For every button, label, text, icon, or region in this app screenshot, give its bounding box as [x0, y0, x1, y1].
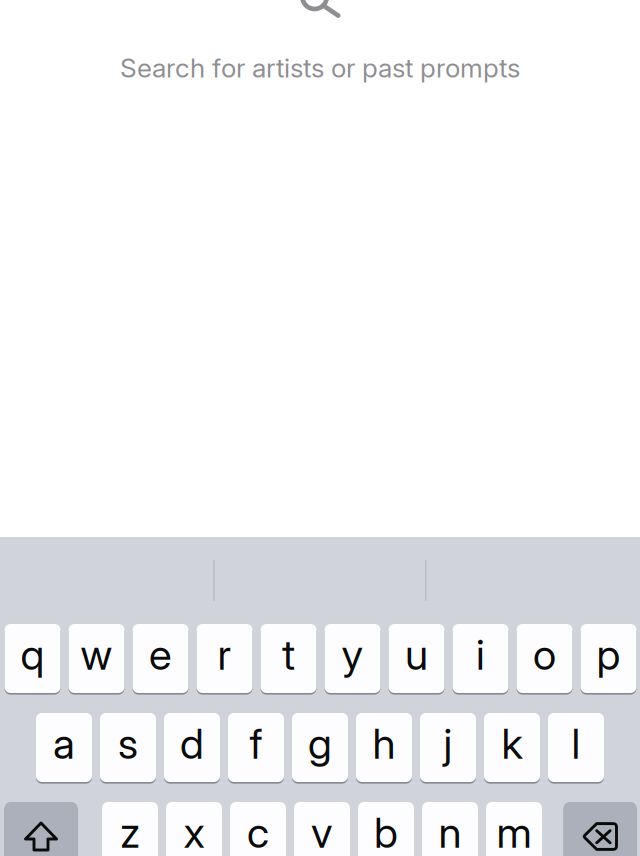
staticText: h [372, 718, 395, 769]
button[interactable]: c [230, 802, 286, 856]
button[interactable]: k [484, 713, 540, 782]
staticText: x [183, 807, 204, 856]
staticText: n [438, 807, 461, 856]
staticText: e [149, 629, 172, 680]
staticText: g [308, 718, 332, 769]
button[interactable]: j [420, 713, 476, 782]
button[interactable]: q [4, 624, 60, 693]
staticText: o [533, 629, 556, 680]
staticText: f [249, 718, 262, 769]
button[interactable]: i [452, 624, 508, 693]
button[interactable]: y [324, 624, 380, 693]
staticText: t [282, 629, 295, 680]
staticText: m [496, 807, 531, 856]
staticText: r [217, 629, 231, 680]
staticText: d [180, 718, 204, 769]
staticText: j [443, 718, 452, 769]
staticText: v [311, 807, 333, 856]
button[interactable]: s [100, 713, 156, 782]
button[interactable]: l [548, 713, 604, 782]
staticText: y [341, 629, 363, 680]
staticText: Search for artists or past prompts [120, 52, 520, 84]
staticText: a [53, 718, 75, 769]
button[interactable]: Shift [4, 802, 77, 856]
button[interactable]: t [260, 624, 316, 693]
staticText: b [374, 807, 398, 856]
staticText: p [596, 629, 620, 680]
staticText: u [405, 629, 428, 680]
button[interactable]: m [486, 802, 542, 856]
staticText: l [571, 718, 580, 769]
button[interactable]: v [294, 802, 350, 856]
button[interactable]: d [164, 713, 220, 782]
staticText: s [118, 718, 138, 769]
staticText: q [20, 629, 44, 680]
button[interactable]: g [292, 713, 348, 782]
staticText: k [501, 718, 522, 769]
button[interactable]: x [166, 802, 222, 856]
button[interactable]: z [102, 802, 158, 856]
button[interactable]: p [580, 624, 636, 693]
button[interactable]: e [132, 624, 188, 693]
button[interactable]: r [196, 624, 252, 693]
staticText: c [247, 807, 269, 856]
staticText: w [80, 629, 112, 680]
button[interactable]: o [516, 624, 572, 693]
button[interactable]: h [356, 713, 412, 782]
button[interactable]: a [36, 713, 92, 782]
staticText: z [120, 807, 140, 856]
staticText: i [476, 629, 485, 680]
button[interactable]: Delete [564, 802, 637, 856]
button[interactable]: n [422, 802, 478, 856]
button[interactable]: u [388, 624, 444, 693]
button[interactable]: b [358, 802, 414, 856]
button[interactable]: w [68, 624, 124, 693]
button[interactable]: f [228, 713, 284, 782]
